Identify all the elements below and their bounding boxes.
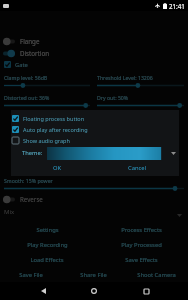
- staticText: Shoot Camera: [137, 271, 176, 279]
- staticText: Play Recording: [27, 241, 68, 249]
- staticText: Show audio graph: [23, 137, 70, 144]
- button[interactable]: Auto play after recording: [11, 124, 179, 135]
- button[interactable]: Play Recording: [0, 237, 94, 252]
- button[interactable]: Shoot Camera: [125, 267, 188, 282]
- button[interactable]: Toggle on: [3, 49, 15, 58]
- staticText: Save Effects: [125, 256, 158, 264]
- staticText: Gate: [15, 61, 28, 69]
- button[interactable]: Toggle off: [3, 37, 15, 46]
- button[interactable]: Home: [85, 282, 103, 300]
- staticText: Reverse: [20, 195, 43, 203]
- button[interactable]: Floating process button: [11, 113, 179, 124]
- staticText: Distortion: [20, 49, 50, 57]
- staticText: Process Effects: [121, 226, 162, 234]
- button[interactable]: Toggle on: [0, 47, 188, 59]
- button[interactable]: Save Effects: [94, 252, 188, 267]
- button[interactable]: Back: [34, 282, 52, 300]
- button[interactable]: Settings: [0, 222, 94, 237]
- button[interactable]: Theme:: [11, 146, 179, 160]
- button[interactable]: Process Effects: [94, 222, 188, 237]
- button[interactable]: Slider: [97, 82, 184, 89]
- staticText: Save File: [19, 271, 43, 279]
- staticText: Mix: [4, 208, 15, 216]
- button[interactable]: Slider: [97, 102, 184, 109]
- button[interactable]: Show audio graph: [11, 135, 179, 146]
- staticText: Flange: [20, 37, 40, 45]
- button[interactable]: Save File: [0, 267, 62, 282]
- staticText: Dry out: 50%: [97, 94, 129, 101]
- staticText: Play Processed: [121, 241, 162, 249]
- button[interactable]: Slider: [4, 185, 184, 192]
- staticText: Smooth: 15% power: [4, 177, 53, 184]
- staticText: Auto play after recording: [23, 126, 88, 133]
- button[interactable]: Cancel: [97, 161, 177, 174]
- staticText: Theme:: [22, 149, 43, 157]
- staticText: Settings: [36, 226, 59, 234]
- staticText: OK: [53, 164, 62, 172]
- button[interactable]: OK: [17, 161, 97, 174]
- button[interactable]: Load Effects: [0, 252, 94, 267]
- button[interactable]: Slider: [4, 82, 90, 89]
- staticText: Cancel: [128, 164, 147, 172]
- staticText: Share File: [80, 271, 107, 279]
- button[interactable]: Gate: [0, 59, 188, 70]
- staticText: Distorted out: 36%: [4, 94, 50, 101]
- button[interactable]: Recents: [137, 282, 155, 300]
- button[interactable]: Mix: [0, 205, 188, 218]
- staticText: Floating process button: [23, 115, 85, 122]
- staticText: Threshold Level: 13206: [97, 74, 153, 81]
- staticText: Load Effects: [30, 256, 64, 264]
- staticText: Clamp level: 56dB: [4, 74, 48, 81]
- button[interactable]: Slider: [4, 102, 90, 109]
- button[interactable]: Toggle off: [0, 35, 188, 47]
- button[interactable]: Toggle off: [0, 193, 188, 205]
- button[interactable]: Share File: [62, 267, 125, 282]
- staticText: 21:41: [169, 2, 185, 10]
- button[interactable]: Play Processed: [94, 237, 188, 252]
- button[interactable]: Toggle off: [3, 195, 15, 204]
